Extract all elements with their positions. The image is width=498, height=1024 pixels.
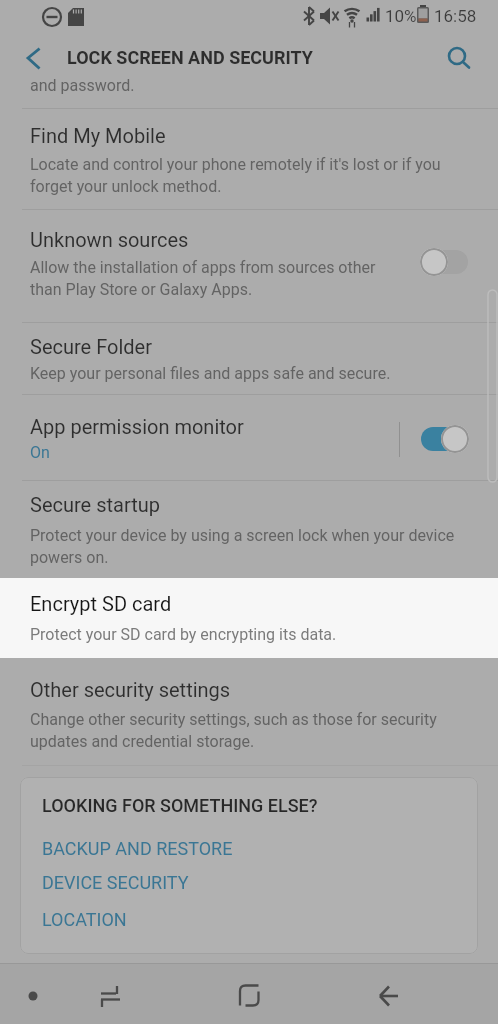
staticText: Allow the installation of apps from sour… <box>30 258 376 277</box>
button[interactable] <box>0 481 498 578</box>
staticText: Protect your device by using a screen lo… <box>30 526 455 545</box>
staticText: 16:58 <box>434 6 477 26</box>
staticText: Secure Folder <box>30 335 152 358</box>
button[interactable] <box>0 323 498 394</box>
button[interactable]: DEVICE SECURITY <box>42 872 202 896</box>
staticText: 10% <box>385 6 417 26</box>
button[interactable]: BACKUP AND RESTORE <box>42 838 242 862</box>
staticText: LOCATION <box>42 909 127 930</box>
button[interactable] <box>0 963 166 1024</box>
button[interactable] <box>0 395 498 480</box>
staticText: powers on. <box>30 548 109 567</box>
button[interactable] <box>0 578 498 658</box>
staticText: Other security settings <box>30 678 231 701</box>
staticText: updates and credential storage. <box>30 732 255 751</box>
staticText: Keep your personal files and apps safe a… <box>30 364 391 383</box>
staticText: On <box>30 443 50 462</box>
staticText: Find My Mobile <box>30 124 166 147</box>
staticText: and password. <box>30 76 135 95</box>
staticText: than Play Store or Galaxy Apps. <box>30 280 253 299</box>
button[interactable] <box>440 38 478 76</box>
staticText: Locate and control your phone remotely i… <box>30 155 441 174</box>
button[interactable] <box>332 963 498 1024</box>
staticText: Protect your SD card by encrypting its d… <box>30 625 337 644</box>
staticText: Unknown sources <box>30 228 189 251</box>
button[interactable] <box>0 109 498 209</box>
staticText: LOOKING FOR SOMETHING ELSE? <box>42 795 318 816</box>
staticText: Change other security settings, such as … <box>30 710 437 729</box>
staticText: Encrypt SD card <box>30 592 172 615</box>
staticText: BACKUP AND RESTORE <box>42 838 233 859</box>
button[interactable] <box>16 42 50 76</box>
button[interactable] <box>0 210 498 322</box>
button[interactable] <box>0 658 498 765</box>
button[interactable] <box>166 963 332 1024</box>
staticText: forget your unlock method. <box>30 177 222 196</box>
staticText: App permission monitor <box>30 415 244 438</box>
staticText: LOCK SCREEN AND SECURITY <box>67 47 313 68</box>
staticText: DEVICE SECURITY <box>42 872 189 893</box>
button[interactable]: LOCATION <box>42 909 142 933</box>
staticText: Secure startup <box>30 493 160 516</box>
